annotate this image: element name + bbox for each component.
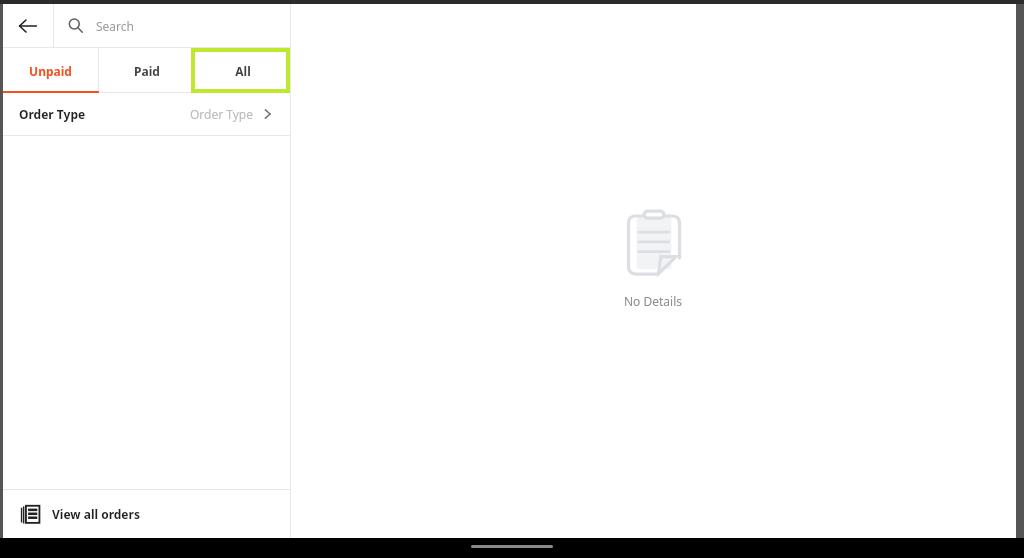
staticText: View all orders bbox=[52, 506, 140, 522]
button[interactable]: Back bbox=[3, 4, 53, 47]
button[interactable]: All bbox=[195, 48, 290, 93]
button[interactable]: Search bbox=[54, 4, 290, 47]
staticText: Search bbox=[96, 18, 134, 34]
staticText: All bbox=[235, 63, 251, 79]
staticText: Paid bbox=[134, 63, 160, 79]
button[interactable]: Unpaid bbox=[3, 48, 98, 93]
staticText: Order Type bbox=[190, 106, 254, 122]
staticText: Order Type bbox=[19, 106, 86, 122]
button[interactable]: Order Type bbox=[3, 93, 290, 135]
button[interactable]: Paid bbox=[99, 48, 194, 93]
staticText: No Details bbox=[624, 293, 683, 309]
staticText: Unpaid bbox=[29, 63, 72, 79]
button[interactable]: View all orders bbox=[3, 490, 290, 538]
